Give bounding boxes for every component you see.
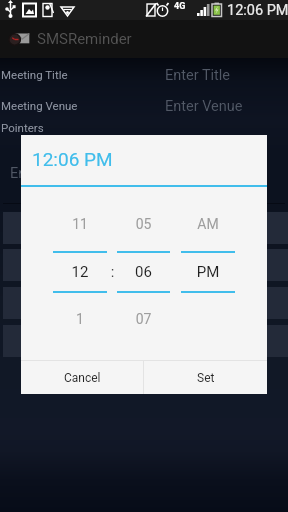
staticText: SMSReminder xyxy=(37,30,132,48)
button[interactable]: Enter Venue xyxy=(165,98,283,120)
staticText: 12 xyxy=(53,263,107,281)
button[interactable]: App icon xyxy=(0,20,288,58)
staticText: Meeting Title xyxy=(1,68,68,81)
staticText: Set xyxy=(197,371,215,385)
button[interactable]: Meeting Venue xyxy=(1,99,151,119)
button[interactable]: 1 xyxy=(53,311,107,329)
staticText: PM xyxy=(181,263,235,281)
staticText: 1 xyxy=(53,311,107,327)
staticText: Enter Title xyxy=(165,67,231,84)
button[interactable]: PM xyxy=(181,263,235,283)
button[interactable]: 06 xyxy=(117,263,170,283)
button[interactable] xyxy=(3,287,288,319)
button[interactable]: Cancel xyxy=(21,361,143,394)
staticText: AM xyxy=(181,216,235,232)
staticText: Enter Venue xyxy=(165,98,243,115)
button[interactable]: Meeting Title xyxy=(1,68,151,88)
staticText: 12:06 PM xyxy=(32,148,113,170)
button[interactable] xyxy=(3,325,288,357)
staticText: 05 xyxy=(117,216,170,232)
staticText: Cancel xyxy=(64,371,101,385)
button[interactable]: AM xyxy=(181,216,235,234)
staticText: 12:06 PM xyxy=(227,2,288,19)
button[interactable]: Pointers xyxy=(1,121,44,134)
button[interactable]: 05 xyxy=(117,216,170,234)
staticText: 11 xyxy=(53,216,107,232)
button[interactable]: 11 xyxy=(53,216,107,234)
button[interactable]: Enter Pointers xyxy=(10,165,101,182)
button[interactable]: Enter Title xyxy=(165,67,283,89)
button[interactable] xyxy=(3,212,288,244)
button[interactable] xyxy=(3,249,288,281)
staticText: Meeting Venue xyxy=(1,99,78,112)
button[interactable]: 12 xyxy=(53,263,107,283)
button[interactable]: Set xyxy=(144,361,267,394)
staticText: Enter Pointers xyxy=(10,165,101,182)
other: App icon xyxy=(7,27,31,51)
staticText: 4G xyxy=(174,1,186,12)
staticText: : xyxy=(107,263,118,281)
button[interactable]: 07 xyxy=(117,311,170,329)
staticText: Pointers xyxy=(1,121,44,134)
staticText: 07 xyxy=(117,311,170,327)
staticText: 06 xyxy=(117,263,170,281)
